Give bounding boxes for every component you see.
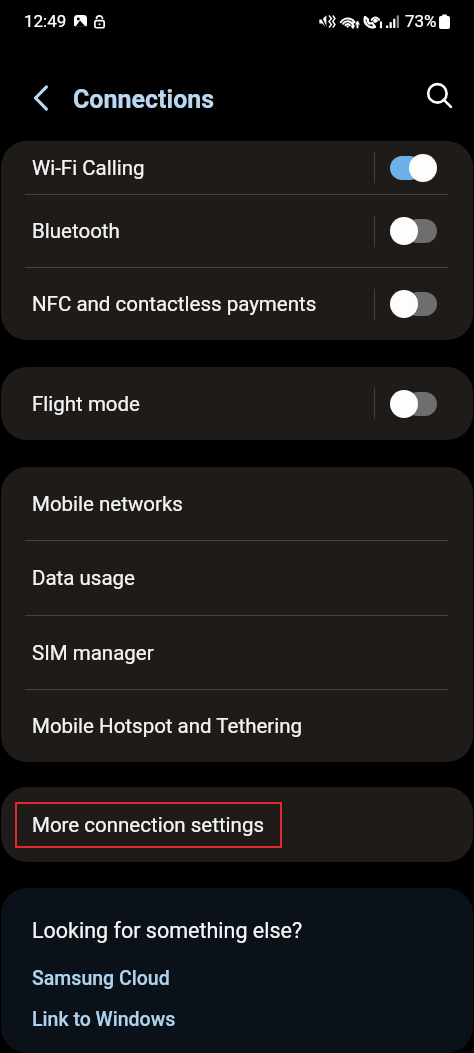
staticText: More connection settings <box>32 813 265 837</box>
staticText: 12:49 <box>24 11 67 31</box>
button[interactable]: Search <box>416 72 464 120</box>
staticText: Data usage <box>32 566 135 590</box>
button[interactable]: Samsung Cloud <box>1 965 473 992</box>
button[interactable]: Mobile Hotspot and Tethering <box>1 690 473 762</box>
staticText: Mobile networks <box>32 492 183 516</box>
button[interactable]: Navigate up <box>17 74 65 122</box>
button[interactable]: NFC and contactless payments <box>1 268 473 340</box>
staticText: Connections <box>73 85 215 114</box>
button[interactable]: Off <box>390 290 437 318</box>
button[interactable]: Mobile networks <box>1 467 473 540</box>
staticText: Samsung Cloud <box>32 967 170 990</box>
button[interactable]: Off <box>390 217 437 245</box>
button[interactable]: On <box>390 154 437 182</box>
button[interactable]: Flight mode <box>1 367 473 440</box>
staticText: Flight mode <box>32 392 374 416</box>
staticText: 73% <box>405 11 437 31</box>
button[interactable]: Link to Windows <box>1 1006 473 1033</box>
button[interactable]: More connection settings <box>15 802 282 848</box>
staticText: Looking for something else? <box>32 918 303 943</box>
staticText: Wi-Fi Calling <box>32 156 374 180</box>
button[interactable]: SIM manager <box>1 616 473 689</box>
staticText: NFC and contactless payments <box>32 292 374 316</box>
button[interactable]: Data usage <box>1 541 473 615</box>
staticText: SIM manager <box>32 641 154 665</box>
button[interactable]: Wi-Fi Calling <box>1 141 473 194</box>
staticText: Link to Windows <box>32 1008 176 1031</box>
staticText: Bluetooth <box>32 219 374 243</box>
staticText: Mobile Hotspot and Tethering <box>32 714 303 738</box>
button[interactable]: Bluetooth <box>1 195 473 267</box>
button[interactable]: Off <box>390 390 437 418</box>
